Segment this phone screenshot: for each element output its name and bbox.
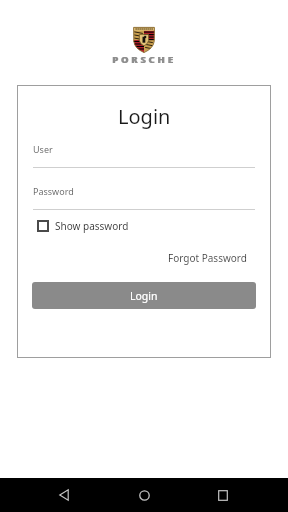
staticText: PORSCHE: [112, 53, 176, 65]
button[interactable]: [199, 478, 247, 512]
staticText: User: [33, 143, 53, 155]
staticText: PORSCHE: [113, 53, 177, 65]
button[interactable]: Show password: [37, 219, 129, 233]
button[interactable]: Login: [32, 282, 256, 309]
staticText: Login: [118, 103, 171, 130]
button[interactable]: User: [33, 143, 255, 169]
button[interactable]: Forgot Password: [168, 251, 247, 265]
staticText: Password: [33, 185, 74, 197]
staticText: Login: [130, 289, 158, 303]
button[interactable]: Password: [33, 185, 255, 211]
button[interactable]: [40, 478, 88, 512]
staticText: Show password: [55, 219, 129, 233]
button[interactable]: [120, 478, 168, 512]
